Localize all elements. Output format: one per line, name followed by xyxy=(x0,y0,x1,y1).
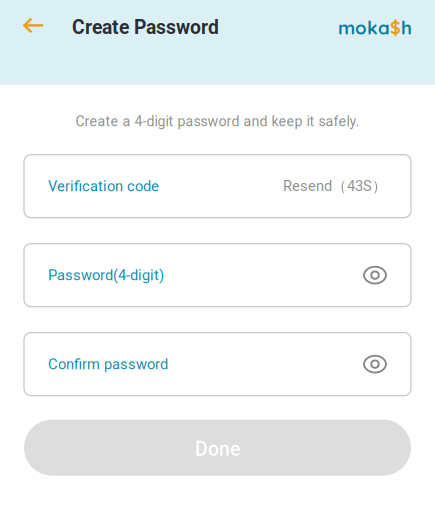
staticText: Verification code xyxy=(48,177,159,195)
staticText: Done xyxy=(195,438,240,460)
staticText: Confirm password xyxy=(48,355,168,373)
button[interactable]: Back xyxy=(0,10,72,41)
button[interactable]: Show password xyxy=(363,264,387,286)
staticText: moka xyxy=(338,16,390,39)
staticText: Password(4-digit) xyxy=(48,266,164,284)
staticText: h xyxy=(401,16,412,39)
button[interactable]: Show confirm password xyxy=(363,353,387,375)
staticText: Create Password xyxy=(72,16,219,39)
button[interactable]: Done xyxy=(24,420,411,476)
button[interactable]: Resend（43S） xyxy=(283,177,387,195)
staticText: Create a 4-digit password and keep it sa… xyxy=(75,113,359,130)
staticText: Resend（43S） xyxy=(283,177,387,195)
staticText: $ xyxy=(390,16,401,39)
